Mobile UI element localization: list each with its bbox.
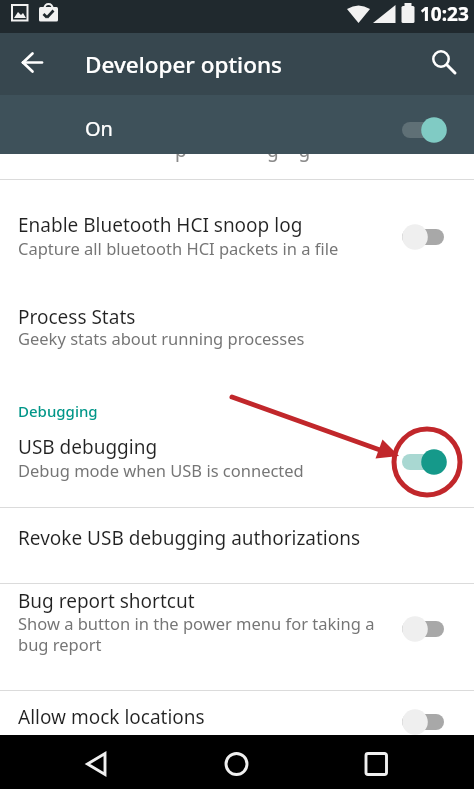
button[interactable] (425, 43, 469, 87)
button[interactable] (0, 691, 474, 735)
button[interactable] (349, 735, 409, 789)
staticText: USB debugging (18, 434, 158, 460)
button[interactable] (0, 508, 474, 583)
staticText: Enable Bluetooth HCI snoop log (18, 212, 303, 238)
staticText: Allow mock locations (18, 704, 205, 730)
button[interactable] (0, 425, 474, 507)
button[interactable] (0, 180, 474, 290)
button[interactable] (399, 707, 447, 737)
staticText: On (85, 115, 113, 142)
button[interactable] (0, 290, 474, 370)
button[interactable] (399, 115, 447, 145)
staticText: Show a button in the power menu for taki… (18, 612, 408, 656)
button[interactable]: On (0, 95, 474, 154)
staticText: Debug mode when USB is connected (18, 459, 388, 481)
button[interactable] (399, 614, 447, 644)
staticText: Process Stats (18, 304, 136, 330)
button[interactable] (399, 222, 447, 252)
staticText: Developer options (85, 49, 282, 80)
button[interactable] (0, 584, 474, 690)
staticText: 10:23 (420, 1, 469, 27)
staticText: p (175, 137, 187, 163)
button[interactable] (0, 33, 60, 95)
staticText: Debugging (18, 401, 98, 421)
staticText: Geeky stats about running processes (18, 327, 388, 349)
button[interactable] (207, 735, 267, 789)
staticText: Revoke USB debugging authorizations (18, 525, 361, 551)
staticText: g g (267, 137, 311, 163)
button[interactable] (399, 447, 447, 477)
staticText: Capture all bluetooth HCI packets in a f… (18, 237, 388, 259)
button[interactable] (65, 735, 125, 789)
staticText: Bug report shortcut (18, 588, 195, 614)
